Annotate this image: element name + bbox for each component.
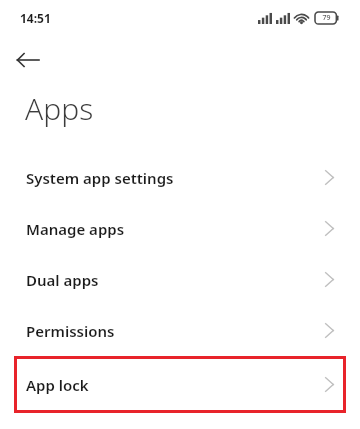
staticText: Apps [25, 88, 94, 129]
button[interactable]: Permissions [0, 305, 360, 356]
button[interactable]: Manage apps [0, 203, 360, 254]
button[interactable]: Back [0, 38, 56, 82]
staticText: Permissions [26, 321, 115, 341]
button[interactable]: App lock [14, 356, 346, 413]
staticText: System app settings [26, 168, 174, 188]
staticText: 14:51 [20, 10, 51, 26]
staticText: Dual apps [26, 270, 99, 290]
staticText: App lock [26, 375, 89, 395]
staticText: 79 [322, 13, 331, 23]
button[interactable]: Dual apps [0, 254, 360, 305]
staticText: Manage apps [26, 219, 125, 239]
button[interactable]: System app settings [0, 152, 360, 203]
